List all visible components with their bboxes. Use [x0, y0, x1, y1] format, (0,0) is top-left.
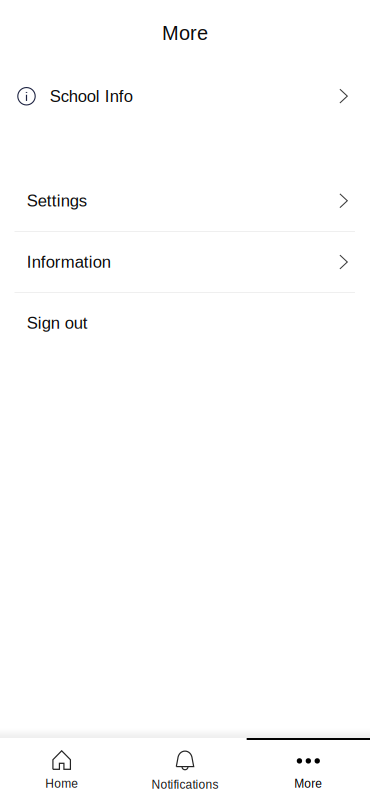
button[interactable]: More [247, 738, 370, 800]
button[interactable]: Sign out [0, 293, 370, 353]
staticText: More [162, 22, 208, 44]
staticText: Home [45, 777, 78, 790]
staticText: More [294, 777, 322, 790]
staticText: School Info [50, 87, 133, 105]
staticText: Settings [27, 191, 87, 210]
button[interactable]: Home [0, 738, 123, 800]
button[interactable]: Information [0, 232, 370, 292]
button[interactable]: School Info [0, 66, 370, 126]
staticText: Sign out [27, 314, 88, 332]
button[interactable]: Notifications [123, 738, 247, 800]
button[interactable]: Settings [0, 170, 370, 231]
staticText: Information [27, 253, 111, 271]
staticText: Notifications [151, 778, 218, 791]
